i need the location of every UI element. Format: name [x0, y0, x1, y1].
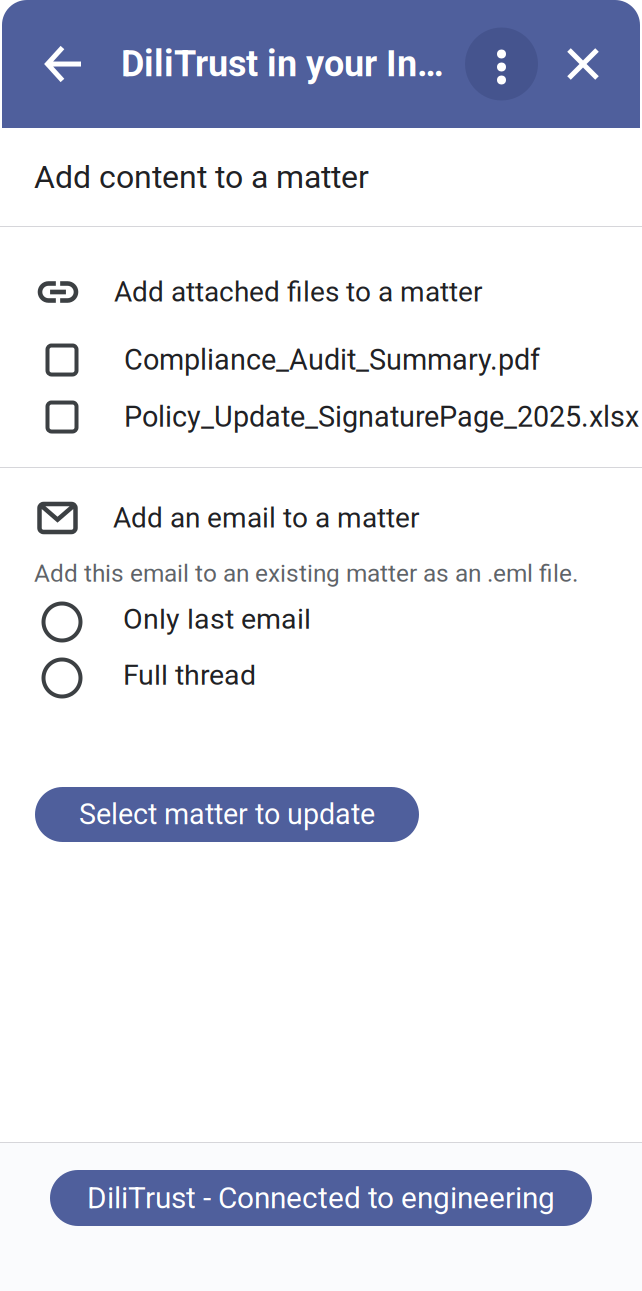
- staticText: Policy_Update_SignaturePage_2025.xlsx: [124, 400, 639, 434]
- staticText: Only last email: [123, 602, 311, 636]
- button[interactable]: Compliance_Audit_Summary.pdf: [0, 332, 642, 388]
- staticText: Select matter to update: [79, 798, 375, 831]
- button[interactable]: Policy_Update_SignaturePage_2025.xlsx: [0, 389, 642, 445]
- staticText: Add this email to an existing matter as …: [34, 559, 578, 588]
- button[interactable]: Only last email: [0, 594, 642, 650]
- button[interactable]: Close: [538, 0, 642, 128]
- staticText: DiliTrust - Connected to engineering: [87, 1181, 555, 1215]
- staticText: DiliTrust in your In…: [121, 43, 444, 85]
- button[interactable]: Full thread: [0, 650, 642, 706]
- staticText: Add an email to a matter: [113, 502, 419, 534]
- staticText: Add attached files to a matter: [114, 276, 482, 308]
- button[interactable]: Back: [0, 0, 121, 128]
- staticText: Compliance_Audit_Summary.pdf: [124, 343, 540, 377]
- staticText: Add content to a matter: [34, 158, 369, 196]
- staticText: Full thread: [123, 658, 256, 692]
- button[interactable]: DiliTrust - Connected to engineering: [50, 1170, 592, 1226]
- button[interactable]: More options: [465, 0, 538, 128]
- button[interactable]: Select matter to update: [35, 787, 419, 842]
